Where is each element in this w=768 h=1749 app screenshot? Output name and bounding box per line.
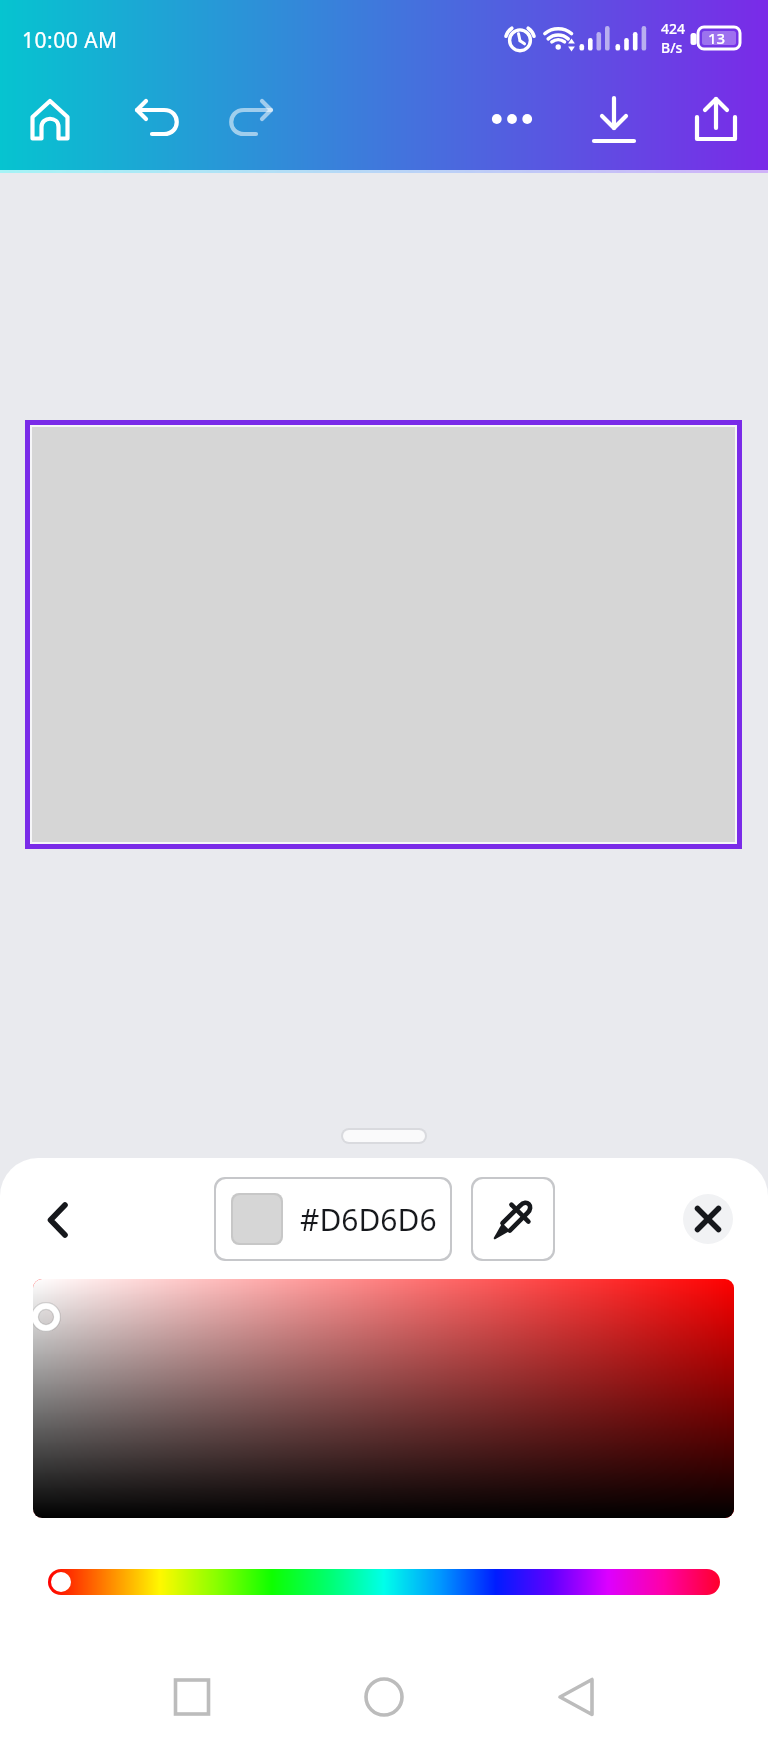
staticText: #D6D6D6 <box>300 1199 437 1240</box>
button[interactable]: Share <box>679 84 753 158</box>
button[interactable]: Home <box>339 1652 429 1742</box>
button[interactable]: More options <box>475 84 549 158</box>
button[interactable]: Hue <box>48 1569 720 1595</box>
staticText: 10:00 AM <box>22 26 118 55</box>
button[interactable]: Eyedropper <box>473 1179 553 1259</box>
button[interactable]: Download <box>577 84 651 158</box>
button[interactable]: Recents <box>147 1652 237 1742</box>
staticText: 13 <box>708 28 726 48</box>
staticText: 424 <box>661 19 686 38</box>
button[interactable]: Back <box>531 1652 621 1742</box>
button[interactable]: Redo <box>217 84 291 158</box>
button[interactable]: Back <box>22 1184 94 1256</box>
button[interactable]: Home <box>13 84 87 158</box>
staticText: B/s <box>661 38 683 57</box>
button[interactable]: #D6D6D6 <box>216 1179 450 1259</box>
button[interactable]: Undo <box>117 84 191 158</box>
button[interactable]: Saturation and brightness <box>33 1279 734 1518</box>
button[interactable]: Close <box>683 1194 733 1244</box>
